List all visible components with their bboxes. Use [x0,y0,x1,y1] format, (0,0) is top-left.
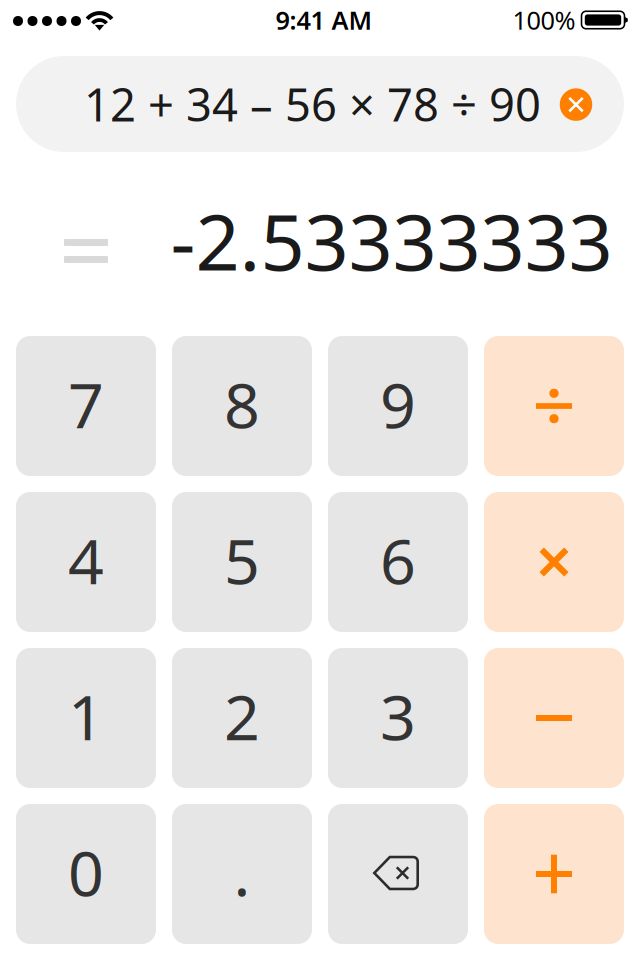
button[interactable]: 9 [328,336,468,476]
button[interactable]: 7 [16,336,156,476]
staticText: 100% [512,3,575,37]
button[interactable]: 3 [328,648,468,788]
button[interactable]: Multiply [484,492,624,632]
button[interactable]: Add [484,804,624,944]
staticText: 0 [68,830,104,914]
staticText: 4 [68,518,104,602]
staticText: -2.53333333 [170,189,612,292]
button[interactable]: 5 [172,492,312,632]
button[interactable]: . [172,804,312,944]
button[interactable]: 8 [172,336,312,476]
staticText: 9 [380,362,416,446]
staticText: 1 [68,674,104,758]
staticText: 3 [380,674,416,758]
button[interactable]: Divide [484,336,624,476]
staticText: . [233,830,250,914]
staticText: 6 [380,518,416,602]
button[interactable]: Delete [328,804,468,944]
button[interactable]: 4 [16,492,156,632]
staticText: 2 [224,674,260,758]
button[interactable]: 2 [172,648,312,788]
staticText: 5 [224,518,260,602]
button[interactable]: 1 [16,648,156,788]
staticText: 9:41 AM [275,3,372,37]
staticText: 8 [224,362,260,446]
button[interactable]: 0 [16,804,156,944]
button[interactable]: 6 [328,492,468,632]
staticText: 12 + 34 – 56 × 78 ÷ 90 [84,74,541,134]
button[interactable]: Subtract [484,648,624,788]
staticText: 7 [68,362,104,446]
button[interactable]: Clear [554,83,598,127]
